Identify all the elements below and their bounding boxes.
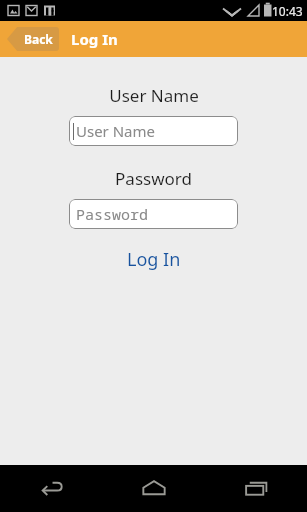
staticText: Password — [115, 167, 192, 190]
staticText: Password — [76, 204, 149, 224]
button[interactable]: Recent apps — [205, 465, 307, 512]
button[interactable]: Back — [0, 465, 103, 512]
button[interactable]: Back — [7, 27, 59, 51]
staticText: Log In — [127, 247, 181, 272]
staticText: Log In — [71, 29, 118, 49]
button[interactable]: Password — [69, 199, 238, 229]
button[interactable]: User Name — [69, 116, 238, 146]
staticText: User Name — [76, 121, 156, 141]
button[interactable]: Home — [103, 465, 205, 512]
staticText: 10:43 — [272, 3, 303, 19]
staticText: User Name — [109, 84, 199, 107]
button[interactable]: Log In — [117, 243, 191, 276]
staticText: Back — [24, 31, 53, 47]
